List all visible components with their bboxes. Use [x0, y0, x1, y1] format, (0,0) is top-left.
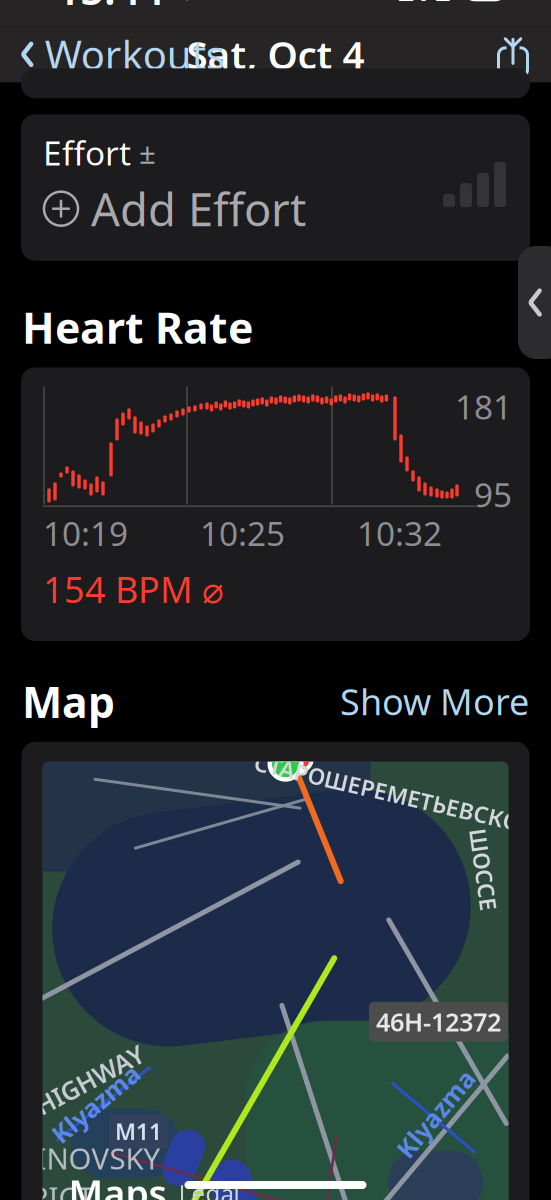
staticText: Map [22, 673, 115, 730]
staticText: СТАРОШЕРЕМЕТЬЕВСКОЕ [251, 779, 536, 809]
button[interactable]: Workout route map [0, 742, 550, 1200]
staticText: ± [139, 133, 156, 172]
staticText: Klyazma [42, 1087, 148, 1120]
staticText: Effort [43, 130, 131, 175]
staticText: Heart Rate [22, 299, 253, 355]
staticText: 66 [469, 0, 501, 7]
staticText: LTE [396, 0, 452, 10]
button[interactable]: Workouts [4, 18, 239, 91]
button[interactable]: Show panel [518, 246, 551, 359]
staticText: Maps [58, 1168, 166, 1200]
staticText: HIGHWAY [30, 1063, 149, 1096]
staticText: M11 [115, 1117, 162, 1147]
staticText: ШОССЕ [442, 855, 525, 885]
staticText: 154 BPM ⌀ [43, 565, 224, 613]
button[interactable]: Show More [340, 677, 529, 725]
staticText: 10:25 [200, 511, 285, 555]
staticText: Sat, Oct 4 [186, 29, 364, 80]
staticText: Klyazma [382, 1097, 488, 1130]
staticText: 46H-12372 [376, 1005, 501, 1038]
staticText: 10:32 [357, 511, 442, 555]
staticText: 10:19 [43, 511, 128, 555]
staticText: NINOVSKY [14, 1139, 160, 1178]
staticText: Workouts [45, 28, 225, 81]
button[interactable]: Effort [0, 114, 551, 261]
staticText: Show More [340, 677, 529, 725]
staticText: Legal [178, 1177, 239, 1200]
staticText: Add Effort [91, 179, 306, 239]
staticText: 95 [474, 472, 512, 516]
button[interactable]: Share [479, 25, 547, 83]
staticText: 15:44 [56, 0, 164, 17]
staticText: TRICT [14, 1178, 93, 1200]
staticText: 181 [455, 384, 512, 429]
